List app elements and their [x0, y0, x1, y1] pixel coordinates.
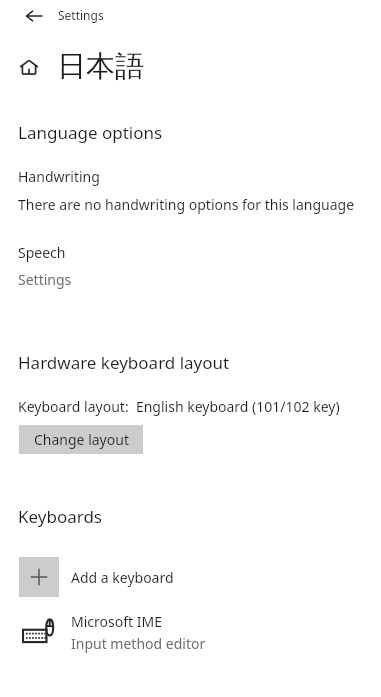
staticText: Speech — [18, 243, 66, 262]
staticText: Add a keyboard — [71, 568, 174, 587]
button[interactable]: Back — [22, 4, 46, 28]
staticText: Hardware keyboard layout — [18, 351, 230, 374]
staticText: Keyboard layout: English keyboard (101/1… — [18, 397, 340, 416]
staticText: Settings — [58, 7, 104, 23]
staticText: Change layout — [34, 430, 129, 449]
staticText: Settings — [18, 270, 72, 289]
staticText: Microsoft IME — [71, 612, 162, 631]
button[interactable]: Settings — [18, 270, 72, 289]
button[interactable]: Microsoft IME — [19, 608, 381, 656]
staticText: Input method editor — [71, 634, 206, 653]
staticText: There are no handwriting options for thi… — [18, 195, 355, 214]
button[interactable]: Change layout — [19, 425, 143, 454]
button[interactable]: Home — [18, 56, 40, 78]
staticText: Keyboards — [18, 505, 102, 528]
staticText: Handwriting — [18, 167, 100, 186]
staticText: Language options — [18, 121, 163, 144]
button[interactable]: Add a keyboard — [19, 549, 174, 605]
staticText: 日本語 — [57, 48, 144, 85]
